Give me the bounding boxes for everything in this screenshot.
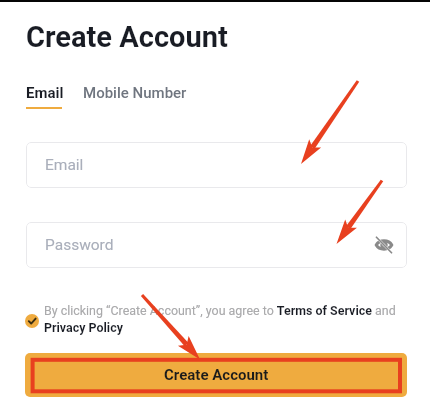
staticText: Password [45,236,114,254]
staticText: By clicking “Create Account”, you agree … [44,303,404,335]
staticText: Email [45,156,84,174]
staticText: Create Account [164,366,269,384]
button[interactable]: Create Account [25,353,407,397]
button[interactable]: Email [26,84,64,109]
button[interactable]: Toggle password visibility [375,236,393,254]
staticText: Email [26,84,64,102]
button[interactable]: Email [26,142,407,188]
button[interactable]: Password [26,222,407,268]
staticText: Create Account [26,20,228,54]
button[interactable]: Mobile Number [83,84,187,102]
button[interactable]: Agree to terms [25,314,39,328]
